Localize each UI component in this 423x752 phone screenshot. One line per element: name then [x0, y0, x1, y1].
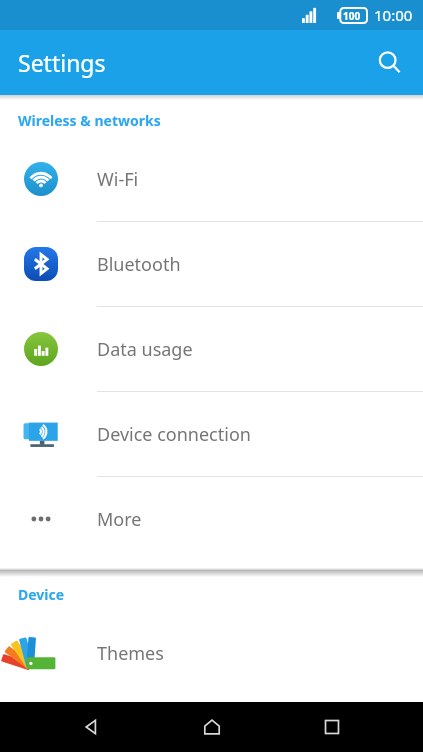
button[interactable]: Home — [182, 702, 242, 752]
staticText: 10:00 — [374, 5, 413, 25]
staticText: 100 — [343, 9, 361, 23]
staticText: Bluetooth — [97, 252, 181, 277]
staticText: Wi-Fi — [97, 167, 139, 192]
button[interactable]: Search — [366, 39, 414, 87]
button[interactable]: Data usage — [0, 307, 423, 391]
staticText: Data usage — [97, 337, 193, 362]
staticText: More — [97, 507, 142, 532]
staticText: Settings — [18, 47, 106, 78]
button[interactable]: Back — [61, 702, 121, 752]
button[interactable]: More — [0, 477, 423, 561]
button[interactable]: Themes — [0, 611, 423, 695]
staticText: Device connection — [97, 422, 251, 447]
staticText: Wireless & networks — [18, 111, 161, 130]
button[interactable]: Bluetooth — [0, 222, 423, 306]
staticText: Themes — [97, 641, 164, 666]
button[interactable]: Recent apps — [302, 702, 362, 752]
button[interactable]: Wi-Fi — [0, 137, 423, 221]
staticText: Device — [18, 585, 65, 604]
button[interactable]: Device connection — [0, 392, 423, 476]
